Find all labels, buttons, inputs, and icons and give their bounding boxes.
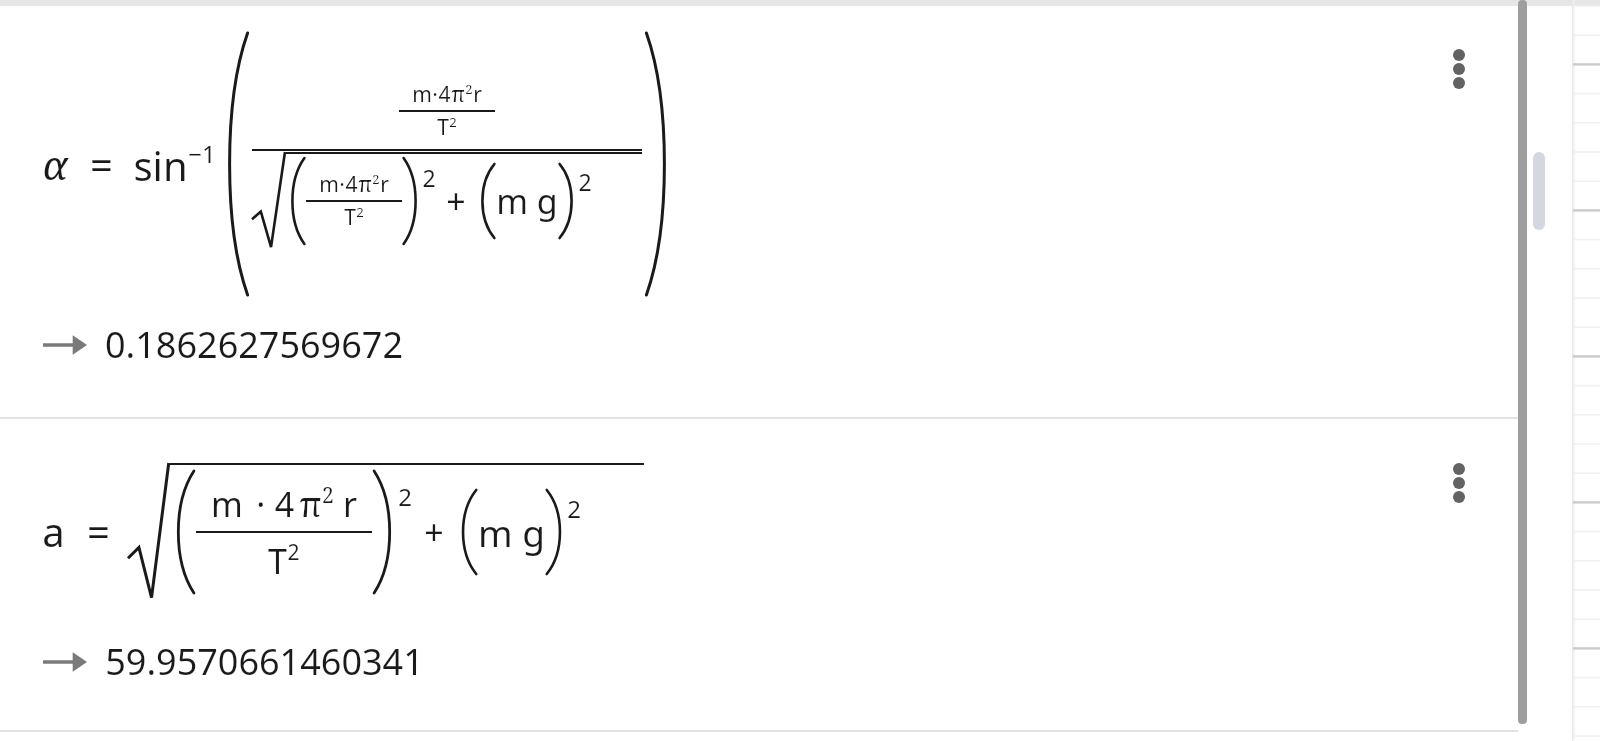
staticText: 2	[567, 492, 581, 525]
staticText: 2	[422, 162, 436, 193]
button[interactable]: Resize panel	[1518, 0, 1527, 724]
staticText: π	[299, 481, 322, 527]
staticText: 4	[438, 80, 451, 109]
staticText: m	[319, 170, 339, 199]
staticText: 59.9570661460341	[105, 637, 424, 686]
staticText: −1	[188, 137, 216, 170]
staticText: 2	[287, 537, 300, 566]
button[interactable]: α	[0, 6, 1518, 417]
staticText: 2	[372, 170, 380, 188]
staticText: 2	[578, 166, 592, 197]
staticText: 2	[322, 480, 334, 509]
staticText: m g	[496, 178, 558, 224]
staticText: π	[358, 170, 372, 199]
staticText: =	[90, 137, 113, 191]
button[interactable]: More options	[1439, 42, 1479, 96]
staticText: m g	[478, 507, 545, 557]
staticText: T	[437, 113, 449, 142]
staticText: m	[211, 481, 243, 527]
staticText: +	[424, 509, 444, 555]
staticText: 2	[465, 80, 473, 98]
staticText: π	[451, 80, 465, 109]
staticText: m	[412, 80, 432, 109]
staticText: T	[344, 203, 356, 232]
staticText: 4	[345, 170, 358, 199]
staticText: 2	[356, 203, 364, 221]
button[interactable]: Scroll	[1533, 152, 1545, 230]
staticText: ·	[432, 80, 438, 109]
staticText: 0.1862627569672	[105, 320, 403, 369]
staticText: +	[446, 178, 466, 224]
staticText: r	[473, 80, 482, 109]
staticText: α	[42, 137, 68, 191]
staticText: 4	[270, 481, 299, 527]
button[interactable]: a	[0, 419, 1518, 730]
staticText: ·	[339, 170, 345, 199]
button[interactable]: 0.1862627569672	[0, 320, 1518, 369]
staticText: 2	[449, 113, 457, 131]
staticText: sin	[133, 138, 188, 192]
button[interactable]: More options	[1439, 456, 1479, 510]
staticText: r	[380, 170, 389, 199]
staticText: 2	[398, 480, 412, 513]
button[interactable]: 59.9570661460341	[0, 637, 1518, 686]
staticText: ·	[243, 481, 270, 527]
staticText: r	[334, 481, 357, 527]
staticText: a	[42, 504, 65, 558]
staticText: T	[268, 538, 287, 584]
staticText: =	[87, 504, 110, 558]
